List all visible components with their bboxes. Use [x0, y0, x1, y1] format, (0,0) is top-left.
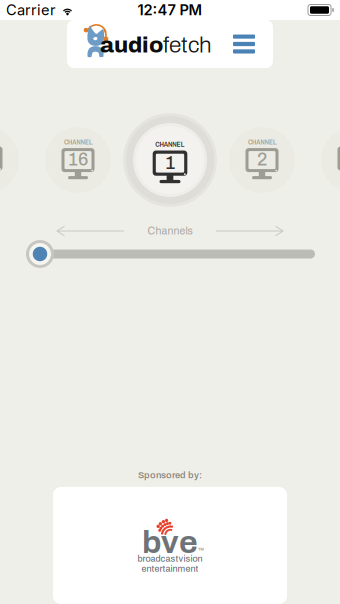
staticText: CHANNEL — [248, 137, 276, 147]
staticText: entertainment — [141, 564, 198, 574]
staticText: 2 — [257, 150, 267, 169]
staticText: broadcastvision — [137, 554, 202, 564]
staticText: 16 — [68, 150, 88, 169]
staticText: bve — [142, 525, 198, 560]
staticText: Channels — [147, 225, 192, 237]
button[interactable]: Menu — [225, 20, 263, 68]
staticText: fetch — [163, 32, 212, 57]
button[interactable]: CHANNEL — [47, 137, 109, 181]
staticText: audio — [100, 32, 163, 57]
staticText: 1 — [165, 152, 175, 173]
staticText: 12:47 PM — [137, 1, 202, 19]
staticText: Carrier — [6, 1, 56, 19]
button[interactable]: CHANNEL — [231, 137, 293, 181]
staticText: Sponsored by: — [138, 470, 202, 480]
staticText: CHANNEL — [155, 139, 185, 149]
staticText: CHANNEL — [64, 137, 92, 147]
button[interactable]: CHANNEL — [123, 113, 217, 207]
staticText: ™ — [198, 547, 204, 554]
